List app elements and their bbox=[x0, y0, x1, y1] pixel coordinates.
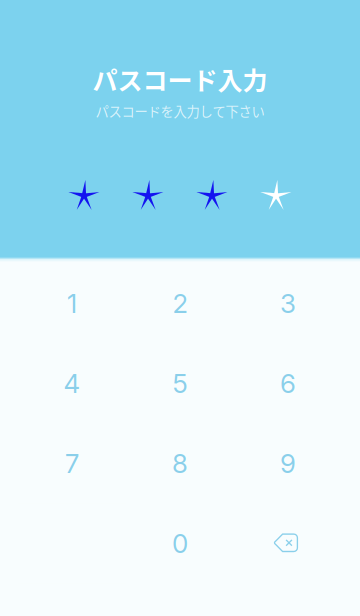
staticText: 9 bbox=[280, 448, 296, 479]
staticText: 7 bbox=[65, 448, 79, 479]
staticText: 4 bbox=[63, 368, 80, 399]
button[interactable]: 3 bbox=[234, 263, 342, 343]
staticText: パスコード入力 bbox=[92, 61, 267, 97]
staticText: 1 bbox=[67, 288, 77, 319]
button[interactable]: 8 bbox=[126, 423, 234, 503]
staticText: 6 bbox=[280, 368, 296, 399]
staticText: 5 bbox=[172, 368, 187, 399]
button[interactable]: Delete bbox=[234, 503, 342, 583]
button[interactable]: 2 bbox=[126, 263, 234, 343]
staticText: 3 bbox=[280, 288, 296, 319]
button[interactable]: 4 bbox=[18, 343, 126, 423]
staticText: パスコードを入力して下さい bbox=[95, 101, 264, 121]
button[interactable]: 1 bbox=[18, 263, 126, 343]
button[interactable]: 9 bbox=[234, 423, 342, 503]
staticText: 0 bbox=[172, 528, 188, 559]
button[interactable]: 7 bbox=[18, 423, 126, 503]
button[interactable]: 5 bbox=[126, 343, 234, 423]
button[interactable]: 6 bbox=[234, 343, 342, 423]
staticText: 8 bbox=[172, 448, 188, 479]
staticText: 2 bbox=[172, 288, 187, 319]
button[interactable]: 0 bbox=[126, 503, 234, 583]
